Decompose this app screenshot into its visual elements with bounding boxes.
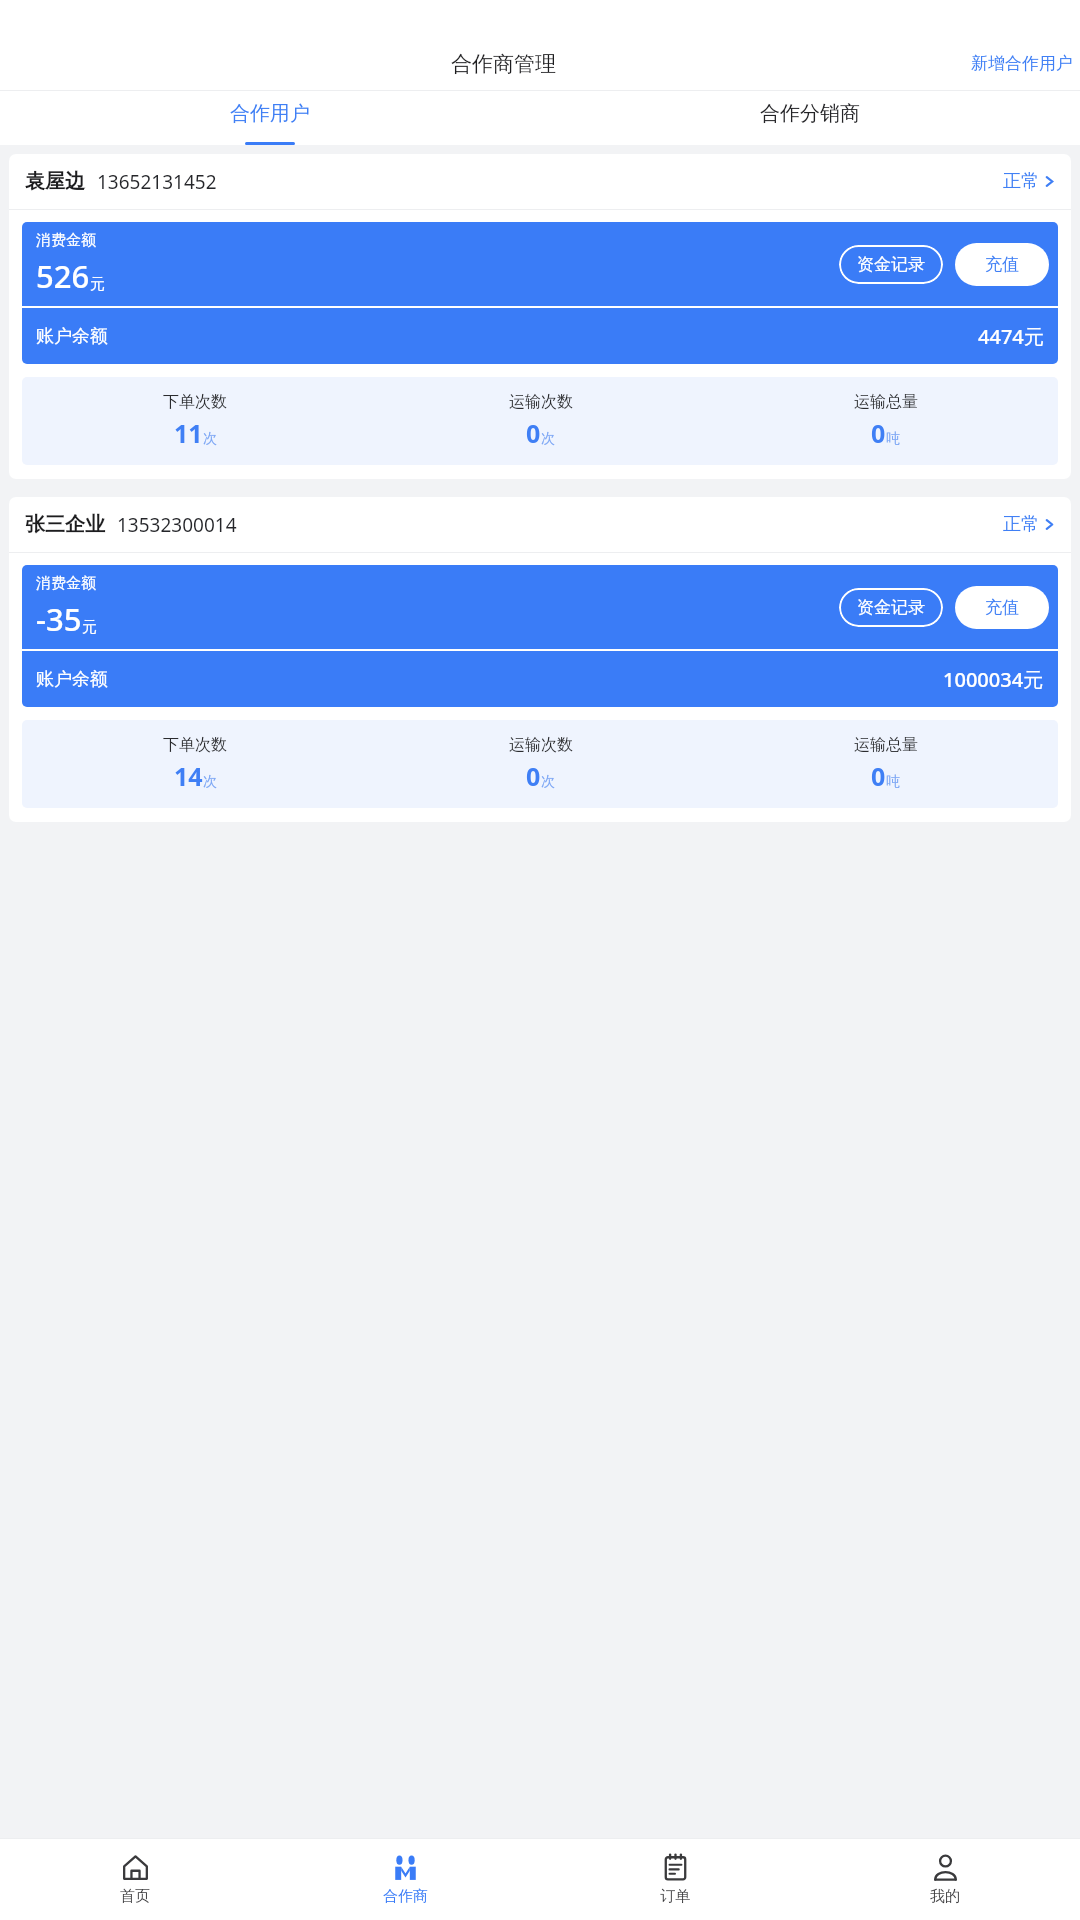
staticText: 合作商管理	[451, 51, 556, 77]
staticText: 下单次数	[163, 392, 227, 412]
staticText: 正常	[1003, 513, 1039, 536]
staticText: 合作商	[383, 1887, 428, 1906]
staticText: 账户余额	[36, 325, 108, 348]
staticText: 0	[526, 759, 541, 793]
staticText: 13532300014	[117, 512, 237, 538]
button[interactable]: 合作商	[270, 1839, 540, 1920]
staticText: 充值	[985, 597, 1019, 618]
button[interactable]: 充值	[955, 586, 1049, 629]
staticText: 账户余额	[36, 668, 108, 691]
button[interactable]: 充值	[955, 243, 1049, 286]
button[interactable]: 合作分销商	[540, 90, 1080, 145]
staticText: 元	[82, 618, 97, 637]
staticText: 正常	[1003, 170, 1039, 193]
staticText: 14	[174, 759, 203, 793]
button[interactable]: 我的	[810, 1839, 1080, 1920]
staticText: 首页	[120, 1887, 150, 1906]
staticText: -35	[36, 598, 82, 640]
staticText: 吨	[886, 430, 900, 448]
staticText: 消费金额	[36, 574, 96, 593]
staticText: 运输次数	[509, 735, 573, 755]
staticText: 我的	[930, 1887, 960, 1906]
staticText: 消费金额	[36, 231, 96, 250]
staticText: 次	[541, 773, 555, 791]
staticText: 元	[90, 275, 105, 294]
staticText: 运输总量	[854, 392, 918, 412]
staticText: 张三企业	[25, 512, 105, 537]
staticText: 下单次数	[163, 735, 227, 755]
staticText: 次	[203, 430, 217, 448]
staticText: 吨	[886, 773, 900, 791]
staticText: 次	[541, 430, 555, 448]
staticText: 资金记录	[857, 254, 925, 275]
staticText: 资金记录	[857, 597, 925, 618]
button[interactable]: 订单	[540, 1839, 810, 1920]
staticText: 13652131452	[97, 169, 217, 195]
staticText: 充值	[985, 254, 1019, 275]
staticText: 次	[203, 773, 217, 791]
staticText: 0	[871, 759, 886, 793]
staticText: 11	[174, 416, 203, 450]
button[interactable]: 资金记录	[839, 245, 943, 284]
staticText: 4474元	[978, 323, 1044, 350]
staticText: 运输总量	[854, 735, 918, 755]
staticText: 运输次数	[509, 392, 573, 412]
button[interactable]: 张三企业	[9, 497, 1071, 822]
staticText: 0	[871, 416, 886, 450]
staticText: 1000034元	[943, 666, 1044, 693]
staticText: 袁屋边	[25, 169, 85, 194]
button[interactable]: 新增合作用户	[964, 45, 1080, 82]
staticText: 合作分销商	[760, 101, 860, 126]
button[interactable]: 资金记录	[839, 588, 943, 627]
staticText: 合作用户	[230, 101, 310, 126]
button[interactable]: 袁屋边	[9, 154, 1071, 479]
button[interactable]: 首页	[0, 1839, 270, 1920]
staticText: 526	[36, 255, 90, 297]
staticText: 新增合作用户	[971, 53, 1073, 74]
staticText: 订单	[660, 1887, 690, 1906]
button[interactable]: 合作用户	[0, 90, 540, 145]
staticText: 0	[526, 416, 541, 450]
